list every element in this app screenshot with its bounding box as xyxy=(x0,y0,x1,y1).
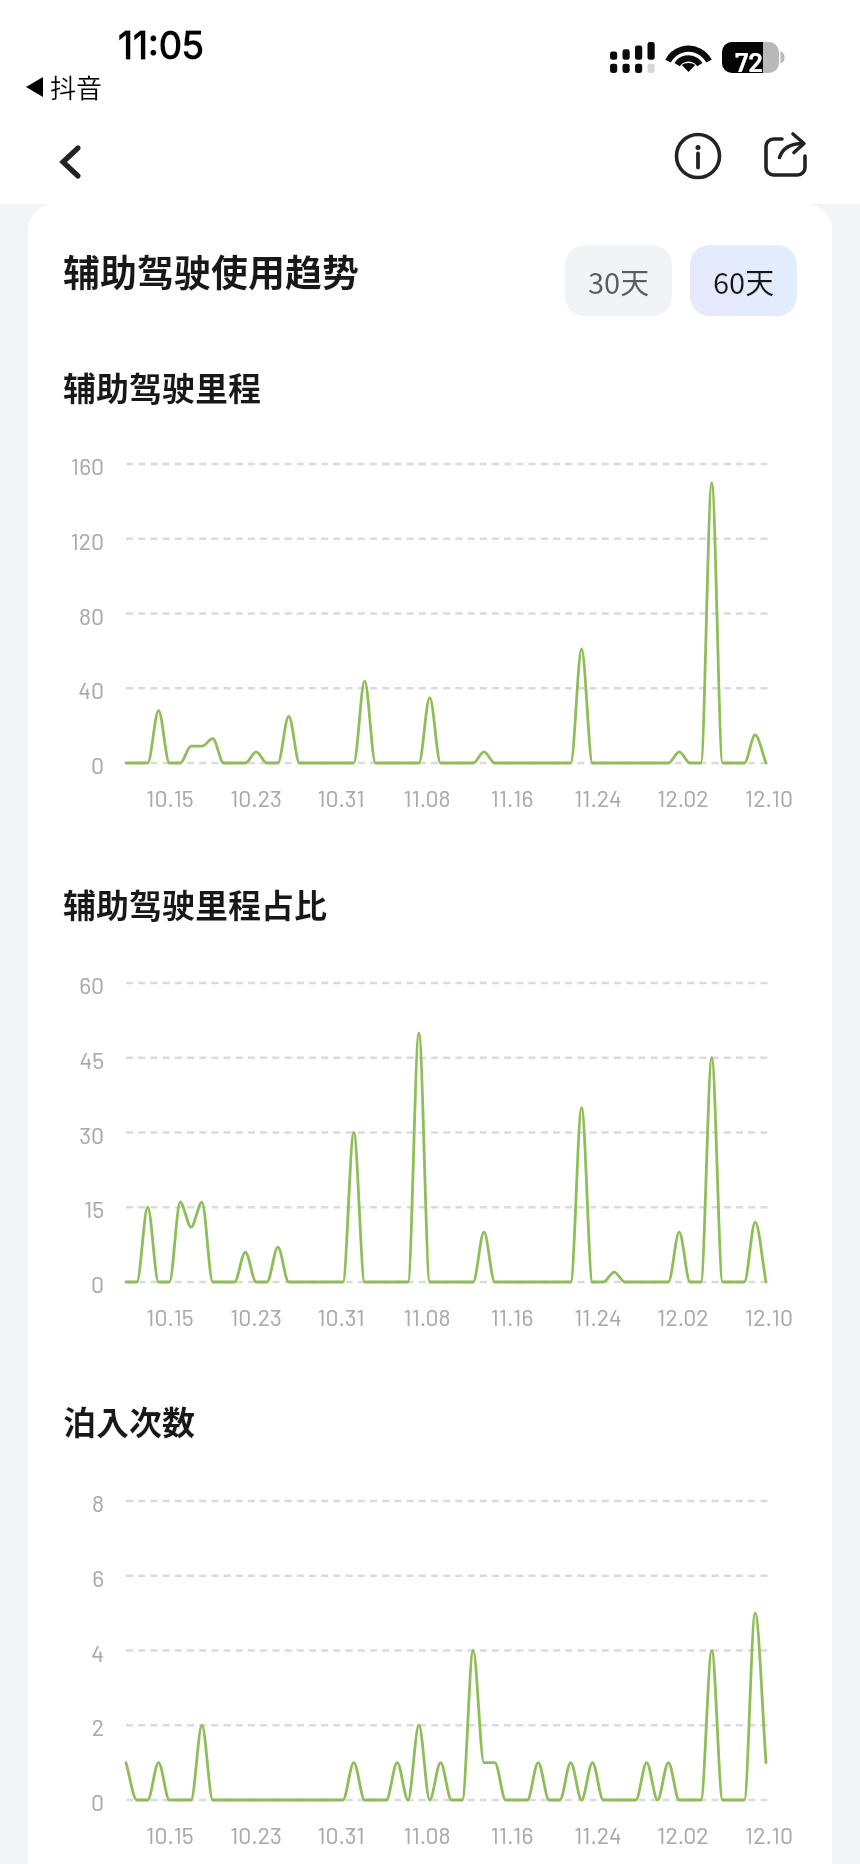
staticText: 0 xyxy=(43,1270,104,1298)
staticText: 0 xyxy=(43,751,104,779)
button[interactable]: Info xyxy=(665,123,731,189)
staticText: 10.23 xyxy=(206,784,306,812)
button[interactable]: Share xyxy=(752,123,818,189)
staticText: 4 xyxy=(43,1639,104,1667)
staticText: 12.02 xyxy=(633,1303,733,1331)
staticText: 10.23 xyxy=(206,1303,306,1331)
staticText: 11:05 xyxy=(118,23,205,68)
staticText: 11.08 xyxy=(377,784,477,812)
staticText: 0 xyxy=(43,1788,104,1816)
button[interactable]: 60天 xyxy=(690,245,797,316)
staticText: 160 xyxy=(43,452,104,480)
staticText: 11.16 xyxy=(462,1303,562,1331)
staticText: 6 xyxy=(43,1564,104,1592)
staticText: 11.24 xyxy=(548,784,648,812)
staticText: 10.31 xyxy=(291,784,391,812)
staticText: 10.15 xyxy=(120,784,220,812)
staticText: 12.10 xyxy=(719,784,819,812)
staticText: 120 xyxy=(43,527,104,555)
staticText: 12.10 xyxy=(719,1303,819,1331)
staticText: 泊入次数 xyxy=(63,1397,195,1445)
staticText: 10.15 xyxy=(120,1303,220,1331)
staticText: 10.15 xyxy=(120,1821,220,1849)
staticText: 60 xyxy=(43,971,104,999)
staticText: 30天 xyxy=(588,260,650,302)
staticText: 11.08 xyxy=(377,1821,477,1849)
staticText: 60天 xyxy=(713,260,775,302)
staticText: 辅助驾驶里程占比 xyxy=(63,880,327,928)
staticText: 11.16 xyxy=(462,1821,562,1849)
staticText: 11.08 xyxy=(377,1303,477,1331)
staticText: 12.02 xyxy=(633,784,733,812)
staticText: 72 xyxy=(735,45,764,76)
staticText: 80 xyxy=(43,602,104,630)
button[interactable]: Back xyxy=(38,128,104,194)
staticText: 10.31 xyxy=(291,1303,391,1331)
staticText: 12.02 xyxy=(633,1821,733,1849)
staticText: 辅助驾驶里程 xyxy=(63,363,261,411)
staticText: 11.24 xyxy=(548,1821,648,1849)
staticText: 辅助驾驶使用趋势 xyxy=(63,244,359,298)
staticText: 2 xyxy=(43,1713,104,1741)
staticText: 11.24 xyxy=(548,1303,648,1331)
staticText: 10.31 xyxy=(291,1821,391,1849)
staticText: 30 xyxy=(43,1121,104,1149)
staticText: 8 xyxy=(43,1489,104,1517)
staticText: 10.23 xyxy=(206,1821,306,1849)
staticText: 15 xyxy=(43,1195,104,1223)
staticText: 40 xyxy=(43,676,104,704)
staticText: 12.10 xyxy=(719,1821,819,1849)
staticText: 抖音 xyxy=(50,68,103,106)
staticText: 45 xyxy=(43,1046,104,1074)
button[interactable]: 30天 xyxy=(565,245,672,316)
staticText: 11.16 xyxy=(462,784,562,812)
